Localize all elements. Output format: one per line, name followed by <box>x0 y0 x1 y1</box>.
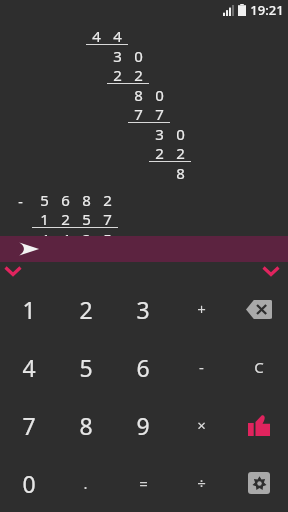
button[interactable]: Backspace <box>230 280 288 338</box>
button[interactable]: 6 <box>114 338 172 396</box>
button[interactable]: × <box>172 396 230 454</box>
staticText: 5 <box>79 352 93 383</box>
staticText: ÷ <box>197 473 206 493</box>
staticText: 1 <box>22 294 36 325</box>
staticText: 8 <box>79 410 93 441</box>
other: Play step <box>18 241 40 257</box>
button[interactable]: 5 <box>57 338 114 396</box>
staticText: 4 <box>61 229 70 249</box>
staticText: 8 <box>176 163 185 183</box>
staticText: 2 <box>134 65 143 85</box>
staticText: 2 <box>79 294 93 325</box>
staticText: 3 <box>136 294 150 325</box>
button[interactable]: + <box>172 280 230 338</box>
staticText: 2 <box>155 143 164 163</box>
staticText: × <box>197 415 206 435</box>
button[interactable]: Check answer <box>230 396 288 454</box>
staticText: 2 <box>113 65 122 85</box>
staticText: - <box>199 357 204 377</box>
staticText: 2 <box>82 229 91 249</box>
button[interactable]: ÷ <box>172 454 230 512</box>
staticText: 1 <box>40 209 49 229</box>
staticText: 5 <box>40 190 49 210</box>
button[interactable]: 7 <box>0 396 57 454</box>
staticText: 4 <box>40 229 49 249</box>
staticText: 4 <box>92 26 101 46</box>
staticText: 7 <box>22 410 36 441</box>
staticText: 2 <box>61 209 70 229</box>
staticText: 0 <box>155 85 164 105</box>
button[interactable]: 3 <box>114 280 172 338</box>
staticText: 6 <box>136 352 150 383</box>
staticText: 7 <box>155 104 164 124</box>
button[interactable]: 8 <box>57 396 114 454</box>
staticText: 5 <box>82 209 91 229</box>
button[interactable]: Settings <box>230 454 288 512</box>
staticText: . <box>83 473 88 493</box>
staticText: 0 <box>176 124 185 144</box>
button[interactable]: 4 <box>0 338 57 396</box>
staticText: 7 <box>103 209 112 229</box>
staticText: 2 <box>103 190 112 210</box>
staticText: 6 <box>61 190 70 210</box>
button[interactable]: 2 <box>57 280 114 338</box>
button[interactable]: - <box>172 338 230 396</box>
button[interactable]: Play step <box>0 236 288 262</box>
staticText: 4 <box>113 26 122 46</box>
staticText: 4 <box>22 352 36 383</box>
staticText: + <box>197 299 206 319</box>
staticText: = <box>139 473 148 493</box>
staticText: 3 <box>113 46 122 66</box>
staticText: C <box>254 357 264 377</box>
button[interactable]: = <box>114 454 172 512</box>
button[interactable]: . <box>57 454 114 512</box>
staticText: 19:21 <box>250 1 284 19</box>
staticText: 8 <box>82 190 91 210</box>
staticText: 0 <box>134 46 143 66</box>
button[interactable]: C <box>230 338 288 396</box>
staticText: 3 <box>155 124 164 144</box>
staticText: 8 <box>134 85 143 105</box>
button[interactable]: Expand <box>260 263 282 279</box>
staticText: 7 <box>134 104 143 124</box>
button[interactable]: 0 <box>0 454 57 512</box>
staticText: 0 <box>22 468 36 499</box>
button[interactable]: Expand <box>2 263 24 279</box>
staticText: 5 <box>103 229 112 249</box>
staticText: 2 <box>176 143 185 163</box>
staticText: - <box>18 192 23 211</box>
button[interactable]: 1 <box>0 280 57 338</box>
staticText: 9 <box>136 410 150 441</box>
button[interactable]: 9 <box>114 396 172 454</box>
